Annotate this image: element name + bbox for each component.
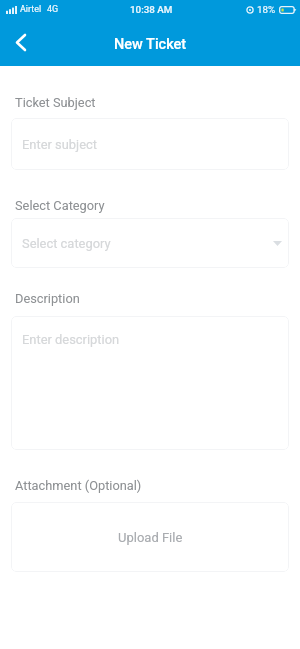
staticText: Select category xyxy=(22,236,111,251)
staticText: 4G xyxy=(47,4,59,15)
staticText: Select Category xyxy=(15,198,105,213)
staticText: Ticket Subject xyxy=(15,95,96,110)
staticText: Description xyxy=(15,291,80,306)
staticText: Enter description xyxy=(22,332,120,347)
button[interactable]: Select category xyxy=(11,218,289,268)
staticText: Enter subject xyxy=(22,137,97,152)
staticText: 10:38 AM xyxy=(130,4,173,15)
button[interactable]: Enter subject xyxy=(11,118,289,170)
button[interactable]: Back xyxy=(4,25,38,59)
staticText: 18% xyxy=(257,4,276,15)
staticText: New Ticket xyxy=(114,36,187,53)
staticText: Upload File xyxy=(118,530,183,545)
button[interactable]: Upload File xyxy=(11,502,289,572)
button[interactable]: Enter description xyxy=(11,316,289,450)
staticText: Airtel xyxy=(20,4,42,15)
staticText: Attachment (Optional) xyxy=(15,478,142,493)
